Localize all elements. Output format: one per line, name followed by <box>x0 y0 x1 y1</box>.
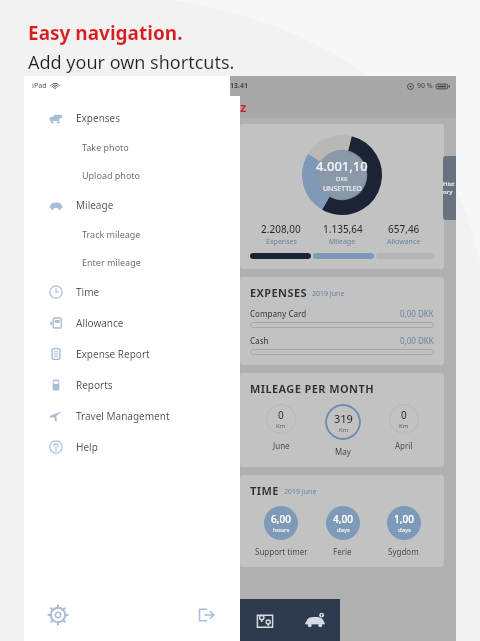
staticText: iPad <box>32 81 47 91</box>
staticText: Take photo <box>82 141 129 153</box>
staticText: Allowance <box>387 237 421 247</box>
staticText: Track mileage <box>82 228 141 240</box>
staticText: Mileage <box>329 237 356 247</box>
staticText: 13.41 <box>230 81 248 91</box>
button[interactable]: 6,00 <box>250 506 312 557</box>
staticText: MILEAGE PER MONTH <box>250 381 374 396</box>
staticText: History <box>443 180 456 196</box>
staticText: Ferie <box>333 546 352 557</box>
staticText: Upload photo <box>82 169 141 181</box>
button[interactable]: Help <box>24 431 240 462</box>
staticText: Enter mileage <box>82 256 141 268</box>
staticText: EXPENSES <box>250 285 307 300</box>
button[interactable]: 0 <box>250 404 312 451</box>
button[interactable]: Expense Report <box>24 338 240 369</box>
staticText: 1,00 <box>394 512 414 526</box>
staticText: Easy navigation. <box>28 20 183 46</box>
staticText: biz <box>228 98 247 116</box>
button[interactable]: Travel Management <box>24 400 240 431</box>
staticText: TIME <box>250 483 279 498</box>
staticText: days <box>398 526 411 534</box>
staticText: Cash <box>250 335 269 346</box>
staticText: Travel Management <box>76 409 170 423</box>
staticText: 657,46 <box>388 222 420 236</box>
staticText: 2019 June <box>284 487 317 497</box>
button[interactable]: Upload photo <box>24 161 240 189</box>
staticText: Add your own shortcuts. <box>28 50 235 75</box>
staticText: Expense Report <box>76 347 150 361</box>
staticText: UNSETTLED <box>323 184 362 194</box>
button[interactable]: Cash <box>250 335 434 355</box>
button[interactable]: Log out <box>194 603 218 627</box>
button[interactable]: 319 <box>312 404 373 457</box>
staticText: Expenses <box>266 237 297 247</box>
staticText: 2.208,00 <box>261 222 301 236</box>
staticText: hours <box>273 526 290 534</box>
button[interactable]: Take photo <box>24 133 240 161</box>
button[interactable]: 2.208,00 <box>250 222 312 247</box>
staticText: Sygdom <box>388 546 419 557</box>
staticText: Time <box>76 285 100 299</box>
button[interactable]: 1,00 <box>373 506 434 557</box>
staticText: May <box>335 446 351 457</box>
button[interactable]: Allowance <box>24 307 240 338</box>
staticText: June <box>273 440 290 451</box>
button[interactable]: Company Card <box>250 308 434 328</box>
button[interactable]: 4,00 <box>312 506 373 557</box>
staticText: Mileage <box>76 198 114 212</box>
button[interactable]: Track mileage <box>240 599 290 641</box>
button[interactable]: Add car trip <box>290 599 340 641</box>
staticText: 0,00 DKK <box>400 308 434 319</box>
staticText: Help <box>76 440 98 454</box>
button[interactable]: Reports <box>24 369 240 400</box>
button[interactable]: 1.135,64 <box>312 222 373 247</box>
staticText: 0,00 DKK <box>400 335 434 346</box>
staticText: Km <box>399 422 409 430</box>
staticText: Km <box>339 426 349 434</box>
staticText: 0 <box>401 408 407 422</box>
staticText: Reports <box>76 378 113 392</box>
staticText: Allowance <box>76 316 124 330</box>
button[interactable]: 657,46 <box>373 222 434 247</box>
staticText: 319 <box>334 411 353 426</box>
staticText: Expenses <box>76 111 121 125</box>
staticText: 4,00 <box>333 512 353 526</box>
staticText: 2019 June <box>312 289 345 299</box>
staticText: 1.135,64 <box>323 222 363 236</box>
staticText: days <box>337 526 350 534</box>
staticText: Km <box>276 422 286 430</box>
staticText: 0 <box>278 408 284 422</box>
staticText: April <box>395 440 413 451</box>
button[interactable]: 0 <box>373 404 434 451</box>
staticText: Company Card <box>250 308 307 319</box>
staticText: DKK <box>336 175 348 183</box>
button[interactable]: Time <box>24 276 240 307</box>
button[interactable]: Mileage <box>24 189 240 220</box>
staticText: 90 % <box>417 81 433 91</box>
button[interactable]: Enter mileage <box>24 248 240 276</box>
button[interactable]: Expenses <box>24 102 240 133</box>
button[interactable]: History <box>443 156 456 220</box>
button[interactable]: Track mileage <box>24 220 240 248</box>
staticText: Support timer <box>255 546 308 557</box>
staticText: 4.001,10 <box>316 157 368 175</box>
button[interactable]: Settings <box>46 603 70 627</box>
staticText: 6,00 <box>271 512 291 526</box>
